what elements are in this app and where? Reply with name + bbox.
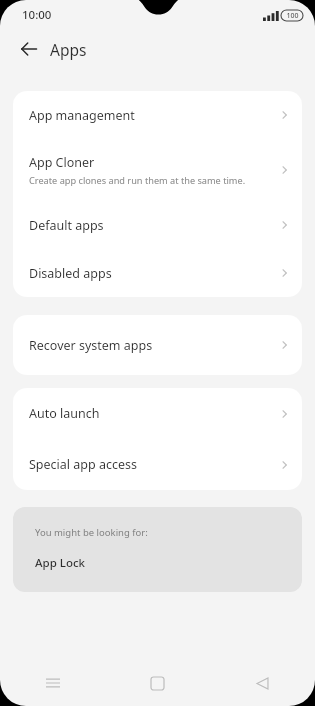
staticText: Apps xyxy=(50,39,87,60)
button[interactable]: Back xyxy=(210,660,315,706)
button[interactable]: Back xyxy=(12,32,46,66)
button[interactable]: App management xyxy=(13,91,302,139)
staticText: App Lock xyxy=(35,555,86,571)
staticText: Create app clones and run them at the sa… xyxy=(29,174,246,187)
staticText: Default apps xyxy=(29,217,104,234)
button[interactable]: Recover system apps xyxy=(13,315,302,375)
button[interactable]: Recent apps xyxy=(0,660,105,706)
button[interactable]: Disabled apps xyxy=(13,249,302,297)
staticText: Disabled apps xyxy=(29,265,112,282)
button[interactable]: Default apps xyxy=(13,201,302,249)
button[interactable]: App Lock xyxy=(13,553,302,573)
staticText: You might be looking for: xyxy=(35,526,148,539)
button[interactable]: App Cloner xyxy=(13,139,302,201)
staticText: Recover system apps xyxy=(29,337,153,354)
staticText: Auto launch xyxy=(29,405,100,422)
staticText: 100 xyxy=(286,11,299,21)
staticText: App Cloner xyxy=(29,154,95,171)
staticText: App management xyxy=(29,107,135,124)
staticText: 10:00 xyxy=(22,7,52,23)
button[interactable]: Special app access xyxy=(13,439,302,490)
button[interactable]: Home xyxy=(105,660,210,706)
staticText: Special app access xyxy=(29,456,137,473)
button[interactable]: Auto launch xyxy=(13,388,302,439)
